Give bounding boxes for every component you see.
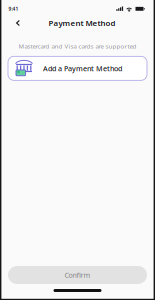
button[interactable]: Back [9, 15, 27, 31]
staticText: Add a Payment Method [43, 63, 122, 73]
staticText: Mastercard and Visa cards are supported [18, 42, 136, 50]
staticText: Payment Method [48, 18, 115, 28]
button[interactable]: Confirm [0, 266, 155, 284]
staticText: 9:41 [8, 5, 18, 12]
button[interactable]: Add a Payment Method [0, 50, 155, 80]
staticText: Confirm [64, 270, 90, 280]
